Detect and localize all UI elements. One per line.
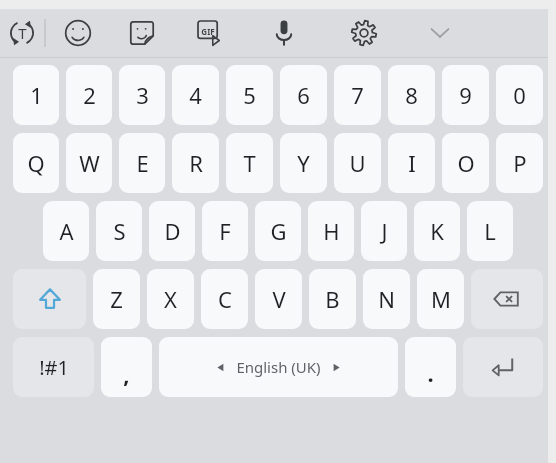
button[interactable]: Backspace xyxy=(471,269,543,329)
button[interactable]: Shift xyxy=(13,269,86,329)
staticText: F xyxy=(219,216,231,246)
button[interactable]: Enter xyxy=(463,337,543,397)
staticText: X xyxy=(164,284,177,314)
button[interactable]: S xyxy=(96,201,142,261)
button[interactable]: Period xyxy=(405,337,456,397)
staticText: Z xyxy=(110,284,123,314)
staticText: U xyxy=(349,148,366,178)
button[interactable]: U xyxy=(334,133,381,193)
button[interactable]: 5 xyxy=(226,65,273,125)
button[interactable]: Y xyxy=(280,133,327,193)
staticText: W xyxy=(79,148,100,178)
staticText: 8 xyxy=(405,80,418,110)
staticText: C xyxy=(218,284,232,314)
staticText: O xyxy=(457,148,475,178)
button[interactable]: Symbols xyxy=(13,337,94,397)
staticText: 7 xyxy=(351,80,364,110)
staticText: N xyxy=(378,284,395,314)
staticText: , xyxy=(123,359,130,389)
button[interactable]: K xyxy=(414,201,460,261)
staticText: A xyxy=(59,216,74,246)
button[interactable]: 7 xyxy=(334,65,381,125)
staticText: B xyxy=(325,284,340,314)
button[interactable]: Hide keyboard xyxy=(404,9,476,57)
button[interactable]: R xyxy=(172,133,219,193)
button[interactable]: Translate xyxy=(0,9,44,57)
button[interactable]: W xyxy=(66,133,112,193)
staticText: T xyxy=(18,23,27,43)
staticText: 3 xyxy=(136,80,149,110)
staticText: J xyxy=(381,216,388,246)
staticText: Q xyxy=(27,148,45,178)
staticText: !#1 xyxy=(39,354,69,381)
staticText: T xyxy=(243,148,256,178)
button[interactable]: GIF xyxy=(175,9,244,57)
button[interactable]: Settings xyxy=(324,9,404,57)
button[interactable]: E xyxy=(119,133,165,193)
button[interactable]: 3 xyxy=(119,65,165,125)
staticText: M xyxy=(431,284,451,314)
button[interactable]: Emoji xyxy=(46,9,109,57)
staticText: 4 xyxy=(189,80,202,110)
button[interactable]: G xyxy=(255,201,301,261)
staticText: 1 xyxy=(30,80,43,110)
staticText: . xyxy=(427,358,434,388)
button[interactable]: 6 xyxy=(280,65,327,125)
button[interactable]: M xyxy=(417,269,464,329)
button[interactable]: L xyxy=(467,201,513,261)
button[interactable]: B xyxy=(309,269,356,329)
button[interactable]: H xyxy=(308,201,354,261)
staticText: GIF xyxy=(201,26,215,37)
button[interactable]: I xyxy=(388,133,435,193)
button[interactable]: 4 xyxy=(172,65,219,125)
button[interactable]: Z xyxy=(93,269,140,329)
button[interactable]: 8 xyxy=(388,65,435,125)
staticText: D xyxy=(164,216,181,246)
button[interactable]: D xyxy=(149,201,195,261)
button[interactable]: Comma xyxy=(101,337,152,397)
staticText: 2 xyxy=(83,80,96,110)
staticText: G xyxy=(270,216,287,246)
button[interactable]: A xyxy=(43,201,89,261)
button[interactable]: F xyxy=(202,201,248,261)
staticText: H xyxy=(323,216,340,246)
staticText: 6 xyxy=(297,80,310,110)
button[interactable]: Q xyxy=(13,133,59,193)
button[interactable]: 9 xyxy=(442,65,489,125)
button[interactable]: 1 xyxy=(13,65,59,125)
staticText: E xyxy=(136,148,149,178)
staticText: R xyxy=(189,148,203,178)
staticText: 0 xyxy=(513,80,526,110)
staticText: V xyxy=(272,284,286,314)
staticText: L xyxy=(484,216,496,246)
button[interactable]: O xyxy=(442,133,489,193)
button[interactable]: Space, English (UK) xyxy=(159,337,398,397)
button[interactable]: X xyxy=(147,269,194,329)
staticText: S xyxy=(113,216,126,246)
button[interactable]: J xyxy=(361,201,407,261)
button[interactable]: V xyxy=(255,269,302,329)
staticText: Y xyxy=(297,148,310,178)
button[interactable]: C xyxy=(201,269,248,329)
button[interactable]: 2 xyxy=(66,65,112,125)
button[interactable]: Voice input xyxy=(244,9,324,57)
button[interactable]: Stickers xyxy=(109,9,175,57)
staticText: 5 xyxy=(243,80,256,110)
staticText: P xyxy=(513,148,527,178)
button[interactable]: N xyxy=(363,269,410,329)
button[interactable]: T xyxy=(226,133,273,193)
staticText: 9 xyxy=(459,80,472,110)
staticText: English (UK) xyxy=(236,357,321,377)
button[interactable]: P xyxy=(496,133,543,193)
button[interactable]: 0 xyxy=(496,65,543,125)
staticText: I xyxy=(408,148,416,178)
staticText: K xyxy=(430,216,444,246)
